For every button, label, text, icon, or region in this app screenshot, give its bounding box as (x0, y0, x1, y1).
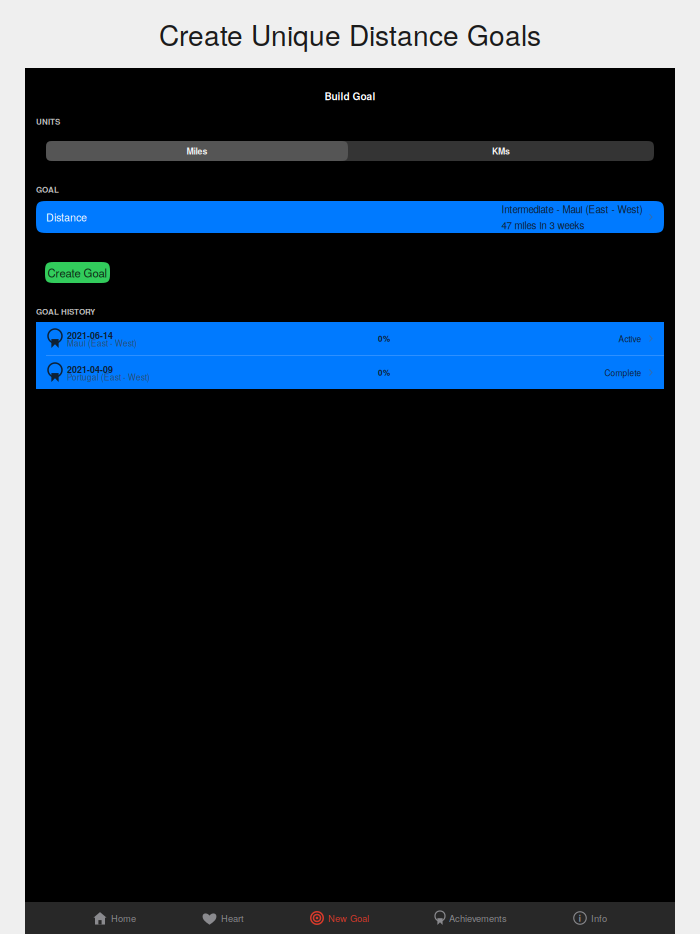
staticText: Build Goal (324, 89, 375, 103)
staticText: GOAL HISTORY (36, 306, 95, 317)
button[interactable]: KMs (348, 141, 654, 161)
staticText: Maui (East - West) (67, 337, 137, 349)
button[interactable]: Miles (46, 141, 348, 161)
staticText: Home (111, 911, 136, 925)
staticText: 2021-04-09 (67, 363, 113, 376)
staticText: Achievements (449, 911, 507, 925)
staticText: Create Goal (47, 264, 107, 281)
staticText: Info (591, 911, 607, 925)
staticText: Complete (604, 366, 641, 378)
staticText: Miles (186, 145, 207, 157)
staticText: Create Unique Distance Goals (159, 14, 541, 54)
staticText: i (578, 911, 581, 925)
staticText: Portugal (East - West) (67, 371, 150, 383)
button[interactable]: Distance (36, 201, 664, 233)
staticText: 0% (378, 333, 390, 344)
button[interactable]: Achievements (435, 902, 507, 934)
staticText: New Goal (328, 911, 369, 925)
staticText: 0% (378, 367, 390, 378)
staticText: Intermediate - Maui (East - West) (501, 202, 642, 216)
button[interactable]: Home (93, 902, 136, 934)
staticText: KMs (492, 145, 510, 157)
button[interactable]: 2021-06-14 (36, 322, 664, 355)
staticText: 47 miles in 3 weeks (501, 218, 584, 232)
button[interactable]: Create Goal (45, 262, 110, 283)
button[interactable]: i (573, 902, 607, 934)
button[interactable]: Heart (202, 902, 244, 934)
button[interactable]: 2021-04-09 (36, 356, 664, 389)
button[interactable]: New Goal (310, 902, 369, 934)
staticText: Heart (221, 911, 244, 925)
staticText: GOAL (36, 184, 59, 195)
staticText: 2021-06-14 (67, 329, 113, 342)
staticText: UNITS (36, 116, 60, 127)
staticText: Active (618, 332, 641, 344)
staticText: Distance (46, 209, 87, 225)
